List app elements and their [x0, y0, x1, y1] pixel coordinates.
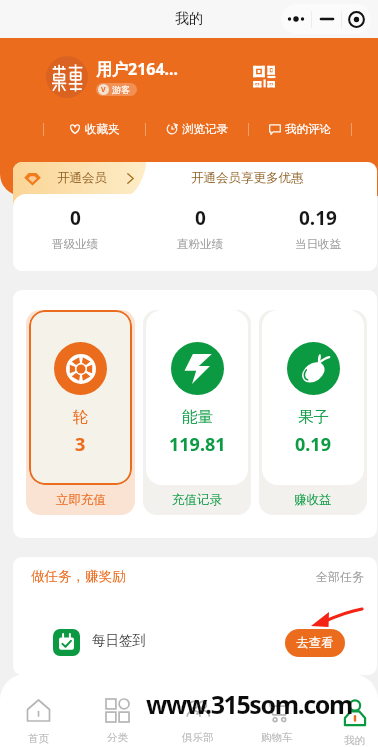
staticText: 每日签到	[92, 632, 146, 649]
button[interactable]: 收藏夹	[44, 118, 145, 140]
button[interactable]: 做任务，赚奖励	[31, 568, 126, 585]
button[interactable]: Minimize	[312, 4, 341, 34]
button[interactable]: More	[281, 4, 311, 34]
staticText: 能量	[182, 407, 213, 427]
staticText: 赚收益	[294, 492, 332, 508]
staticText: 119.81	[169, 432, 226, 457]
staticText: 首页	[28, 732, 49, 745]
staticText: 用户2164...	[96, 58, 179, 80]
staticText: 游客	[112, 84, 130, 95]
staticText: 晋级业绩	[52, 237, 98, 251]
staticText: 充值记录	[172, 492, 222, 508]
staticText: 俱乐部	[182, 731, 214, 744]
staticText: 开通会员	[57, 170, 107, 186]
staticText: 浏览记录	[182, 122, 228, 136]
staticText: 0	[70, 205, 81, 231]
button[interactable]: 首页	[13, 674, 63, 747]
button[interactable]: 俱乐部	[173, 674, 223, 747]
staticText: 直粉业绩	[177, 237, 223, 251]
staticText: 0.19	[295, 432, 331, 457]
staticText: 全部任务	[316, 569, 364, 584]
button[interactable]: QR code	[253, 65, 276, 88]
staticText: 做任务，赚奖励	[31, 568, 126, 585]
button[interactable]: 去查看	[285, 629, 345, 657]
button[interactable]: 分类	[92, 674, 142, 747]
button[interactable]: 能量	[143, 310, 251, 515]
staticText: www.315som.com	[146, 687, 353, 721]
button[interactable]: 全部任务	[316, 569, 364, 584]
staticText: 我的评论	[285, 122, 331, 136]
button[interactable]: 我的评论	[249, 118, 351, 140]
button[interactable]: Avatar	[46, 56, 88, 98]
staticText: 开通会员享更多优惠	[191, 170, 304, 186]
button[interactable]: 购物车	[252, 674, 302, 747]
staticText: 我的	[344, 734, 365, 747]
staticText: 立即充值	[56, 492, 106, 508]
button[interactable]: Close	[342, 4, 371, 34]
button[interactable]: 0	[162, 205, 238, 251]
staticText: 我的	[175, 10, 203, 28]
staticText: 去查看	[296, 635, 334, 651]
staticText: 当日收益	[295, 237, 341, 251]
staticText: 收藏夹	[85, 122, 120, 136]
staticText: 0.19	[299, 205, 337, 231]
button[interactable]: 果子	[259, 310, 367, 515]
staticText: 果子	[298, 407, 329, 427]
button[interactable]: 我的	[331, 674, 378, 747]
staticText: V	[101, 85, 106, 95]
staticText: 3	[75, 432, 86, 457]
staticText: 轮	[73, 407, 89, 427]
staticText: 0	[195, 205, 206, 231]
staticText: 分类	[107, 731, 128, 744]
button[interactable]: 0	[37, 205, 113, 251]
button[interactable]: 轮	[26, 310, 135, 515]
button[interactable]: 浏览记录	[146, 118, 248, 140]
button[interactable]: 0.19	[280, 205, 356, 251]
staticText: 购物车	[261, 731, 293, 744]
